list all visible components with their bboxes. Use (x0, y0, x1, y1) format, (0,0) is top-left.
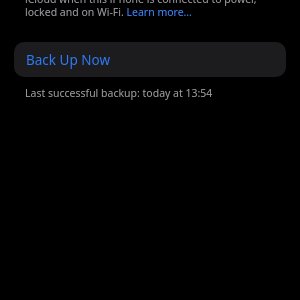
staticText: Last successful backup: today at 13:54 (25, 86, 213, 100)
button[interactable]: Back Up Now (14, 42, 286, 77)
staticText: Back Up Now (26, 51, 110, 69)
staticText: iCloud when this iPhone is connected to … (25, 0, 288, 18)
